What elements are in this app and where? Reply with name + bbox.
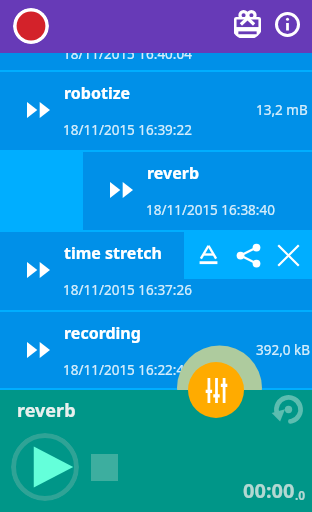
button[interactable]: recording — [0, 310, 312, 390]
button[interactable]: Play — [11, 433, 79, 501]
button[interactable]: 18/11/2015 16:40:04 — [0, 0, 312, 70]
staticText: 18/11/2015 16:38:40 — [146, 201, 275, 219]
button[interactable]: reverb — [83, 150, 312, 230]
staticText: reverb — [147, 162, 200, 184]
button[interactable]: Effects — [188, 362, 244, 418]
staticText: 13,2 mB — [256, 101, 308, 119]
staticText: robotize — [64, 82, 131, 104]
button[interactable]: Record — [13, 8, 49, 44]
staticText: 392,0 kB — [256, 341, 310, 359]
button[interactable]: time stretch — [0, 230, 312, 310]
staticText: reverb — [17, 398, 76, 423]
button[interactable]: Delete — [264, 232, 312, 279]
staticText: 18/11/2015 16:37:26 — [63, 281, 192, 299]
staticText: 18/11/2015 16:39:22 — [63, 121, 192, 139]
button[interactable]: robotize — [0, 70, 312, 150]
button[interactable]: Loop — [269, 390, 307, 428]
button[interactable]: Gift — [231, 8, 263, 40]
staticText: time stretch — [64, 242, 163, 264]
staticText: recording — [64, 322, 141, 344]
staticText: 18/11/2015 16:40:04 — [63, 45, 192, 63]
staticText: .0 — [295, 487, 306, 503]
button[interactable]: Share — [224, 232, 272, 279]
staticText: 00:00 — [243, 477, 295, 504]
button[interactable]: Rename — [184, 231, 232, 278]
staticText: 18/11/2015 16:22:49 — [63, 361, 192, 379]
button[interactable]: Info — [271, 8, 303, 40]
